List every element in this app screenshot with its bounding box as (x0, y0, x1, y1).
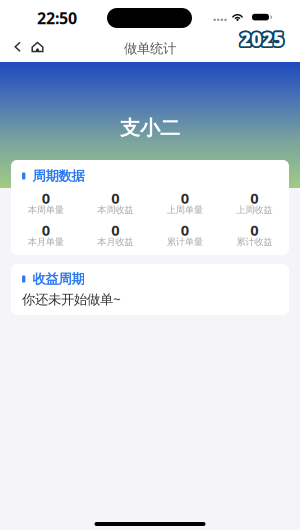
staticText: 0 (181, 188, 189, 208)
staticText: 2025 (242, 27, 286, 52)
staticText: 支小二 (120, 116, 180, 140)
staticText: 2025 (238, 27, 282, 51)
staticText: 做单统计 (124, 40, 176, 57)
staticText: 0 (250, 188, 258, 208)
staticText: 周期数据 (32, 168, 84, 184)
staticText: 0 (250, 220, 258, 240)
staticText: 2025 (241, 25, 285, 50)
staticText: 0 (42, 188, 50, 208)
staticText: 上周单量 (167, 204, 203, 216)
staticText: 0 (111, 188, 119, 208)
staticText: 累计收益 (236, 236, 272, 248)
staticText: 2025 (240, 28, 284, 53)
staticText: 2025 (240, 26, 284, 50)
staticText: 2025 (240, 27, 284, 52)
staticText: 0 (181, 220, 189, 240)
button[interactable]: Home (28, 36, 47, 58)
staticText: 累计单量 (167, 236, 203, 248)
staticText: 2025 (240, 25, 284, 50)
staticText: 2025 (239, 25, 283, 50)
staticText: 0 (111, 220, 119, 240)
staticText: 收益周期 (32, 271, 84, 287)
staticText: 2025 (241, 28, 285, 53)
staticText: 2025 (241, 27, 285, 51)
button[interactable]: Back (10, 35, 25, 58)
staticText: 2025 (239, 28, 283, 53)
staticText: 2025 (239, 27, 283, 51)
staticText: 2025 (242, 26, 286, 51)
staticText: 2025 (239, 25, 283, 50)
staticText: 2025 (238, 26, 282, 51)
staticText: 2025 (240, 27, 284, 51)
staticText: 本周单量 (28, 204, 64, 216)
staticText: 本周收益 (97, 204, 133, 216)
staticText: 2025 (241, 28, 285, 53)
staticText: 上周收益 (236, 204, 272, 216)
staticText: 2025 (242, 27, 286, 51)
staticText: 0 (42, 220, 50, 240)
staticText: 22:50 (37, 7, 77, 29)
staticText: 2025 (241, 25, 285, 50)
staticText: 2025 (238, 27, 282, 52)
button[interactable]: Year 2025 (238, 38, 286, 56)
staticText: 本月单量 (28, 236, 64, 248)
staticText: 2025 (239, 28, 283, 53)
staticText: 本月收益 (97, 236, 133, 248)
staticText: 你还未开始做单~ (22, 290, 121, 308)
